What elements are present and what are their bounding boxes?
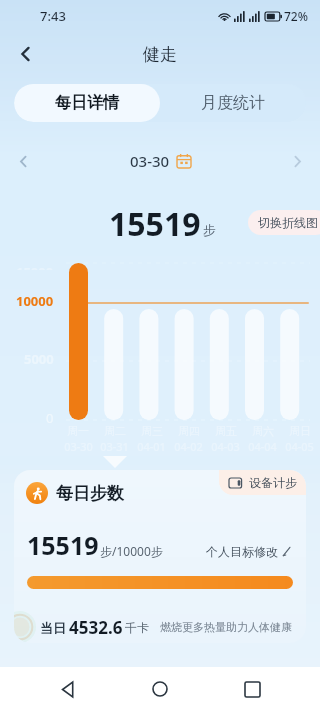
staticText: 每日详情 — [55, 93, 119, 113]
staticText: 03-31 — [100, 439, 129, 454]
button[interactable]: 月度统计 — [160, 84, 306, 122]
staticText: 0 — [46, 409, 54, 427]
staticText: 03-30 — [130, 151, 170, 171]
staticText: 04-02 — [174, 439, 203, 454]
staticText: 15519 — [27, 528, 99, 562]
staticText: 04-04 — [248, 439, 277, 454]
staticText: 04-01 — [137, 439, 166, 454]
staticText: 设备计步 — [249, 475, 297, 490]
button[interactable]: Home — [136, 667, 184, 711]
staticText: 切换折线图 — [258, 215, 318, 230]
staticText: 5000 — [24, 350, 54, 368]
staticText: 燃烧更多热量助力人体健康 — [160, 620, 292, 634]
button[interactable]: 个人目标修改 — [206, 544, 293, 562]
staticText: 周五 — [215, 424, 237, 438]
button[interactable]: Next day — [280, 144, 314, 178]
staticText: 72% — [284, 8, 308, 24]
staticText: 每日步数 — [56, 483, 124, 504]
staticText: 7:43 — [40, 7, 66, 25]
staticText: 周六 — [252, 424, 274, 438]
button[interactable]: Recents — [228, 667, 276, 711]
staticText: 15000 — [16, 263, 54, 270]
staticText: 4532.6 — [69, 616, 123, 639]
staticText: 周日 — [289, 424, 311, 438]
staticText: 10000 — [16, 292, 54, 310]
button[interactable]: Previous day — [6, 144, 40, 178]
button[interactable]: Back — [6, 34, 46, 74]
staticText: 月度统计 — [201, 93, 265, 113]
staticText: 步/10000步 — [100, 543, 163, 559]
staticText: 千卡 — [125, 620, 149, 635]
staticText: 步 — [203, 222, 216, 238]
staticText: 健走 — [143, 44, 177, 65]
button[interactable]: Back — [44, 667, 92, 711]
staticText: 15519 — [109, 202, 201, 242]
staticText: 周二 — [104, 424, 126, 438]
button[interactable]: 切换折线图 — [248, 210, 320, 235]
staticText: 03-30 — [64, 439, 93, 454]
staticText: 04-03 — [211, 439, 240, 454]
staticText: 周四 — [178, 424, 200, 438]
staticText: 个人目标修改 — [206, 544, 278, 559]
button[interactable]: 每日详情 — [14, 84, 160, 122]
staticText: 周一 — [67, 424, 89, 438]
staticText: 当日 — [40, 620, 66, 636]
staticText: 04-05 — [285, 439, 314, 454]
button[interactable]: 设备计步 — [219, 470, 306, 495]
staticText: 周三 — [141, 424, 163, 438]
